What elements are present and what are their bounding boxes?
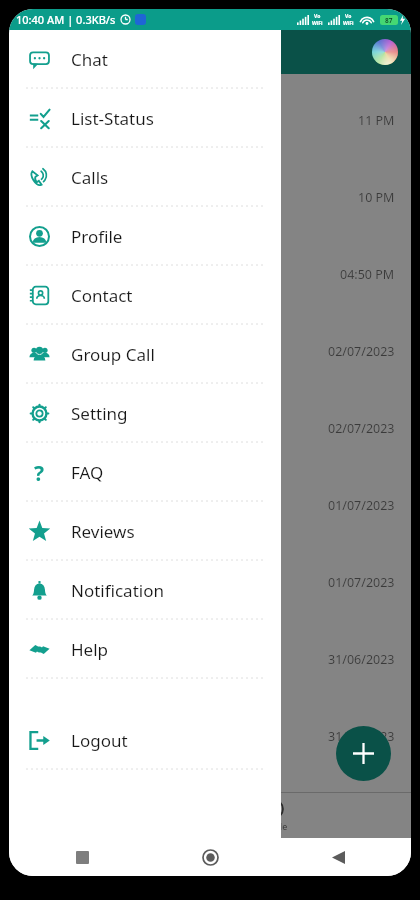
button[interactable]: Add <box>336 726 391 781</box>
button[interactable]: Help <box>9 620 281 679</box>
button[interactable]: Profile <box>9 207 281 266</box>
staticText: 01/07/2023 <box>328 574 395 591</box>
staticText: 02/07/2023 <box>328 420 395 437</box>
button[interactable]: Logout <box>9 711 281 770</box>
staticText: Group Call <box>71 343 155 366</box>
button[interactable]: Profile avatar <box>372 39 398 65</box>
button[interactable]: Back <box>321 840 355 874</box>
button[interactable]: Notification <box>9 561 281 620</box>
staticText: 87 <box>385 16 393 25</box>
staticText: Notification <box>71 579 164 602</box>
staticText: Help <box>71 638 109 661</box>
staticText: Profile <box>260 820 288 832</box>
staticText: Vo <box>314 13 321 20</box>
staticText: List-Status <box>71 107 154 130</box>
staticText: 02/07/2023 <box>328 343 395 360</box>
staticText: Contact <box>71 284 133 307</box>
staticText: WiFi <box>312 20 323 27</box>
staticText: 31/06/2023 <box>328 728 395 745</box>
staticText: Reviews <box>71 520 135 543</box>
button[interactable]: List-Status <box>9 89 281 148</box>
button[interactable]: Home <box>193 840 227 874</box>
staticText: Calls <box>71 166 109 189</box>
staticText: 11 PM <box>358 112 395 129</box>
button[interactable]: Recent apps <box>65 840 99 874</box>
staticText: ? <box>34 459 45 485</box>
staticText: Logout <box>71 729 128 752</box>
staticText: 31/06/2023 <box>328 651 395 668</box>
staticText: 10:40 AM | 0.3KB/s <box>16 12 116 27</box>
staticText: WiFi <box>343 20 354 27</box>
button[interactable]: Profile <box>260 799 288 832</box>
button[interactable]: Reviews <box>9 502 281 561</box>
staticText: Setting <box>71 402 128 425</box>
staticText: FAQ <box>71 461 104 484</box>
button[interactable]: Setting <box>9 384 281 443</box>
button[interactable]: Contact <box>9 266 281 325</box>
staticText: 10 PM <box>358 189 395 206</box>
staticText: 04:50 PM <box>340 266 395 283</box>
button[interactable]: Chat <box>9 30 281 89</box>
button[interactable]: Calls <box>9 148 281 207</box>
button[interactable]: ? <box>9 443 281 502</box>
staticText: Chat <box>71 48 108 71</box>
staticText: 01/07/2023 <box>328 497 395 514</box>
button[interactable]: Group Call <box>9 325 281 384</box>
staticText: Vo <box>345 13 352 20</box>
staticText: Profile <box>71 225 123 248</box>
